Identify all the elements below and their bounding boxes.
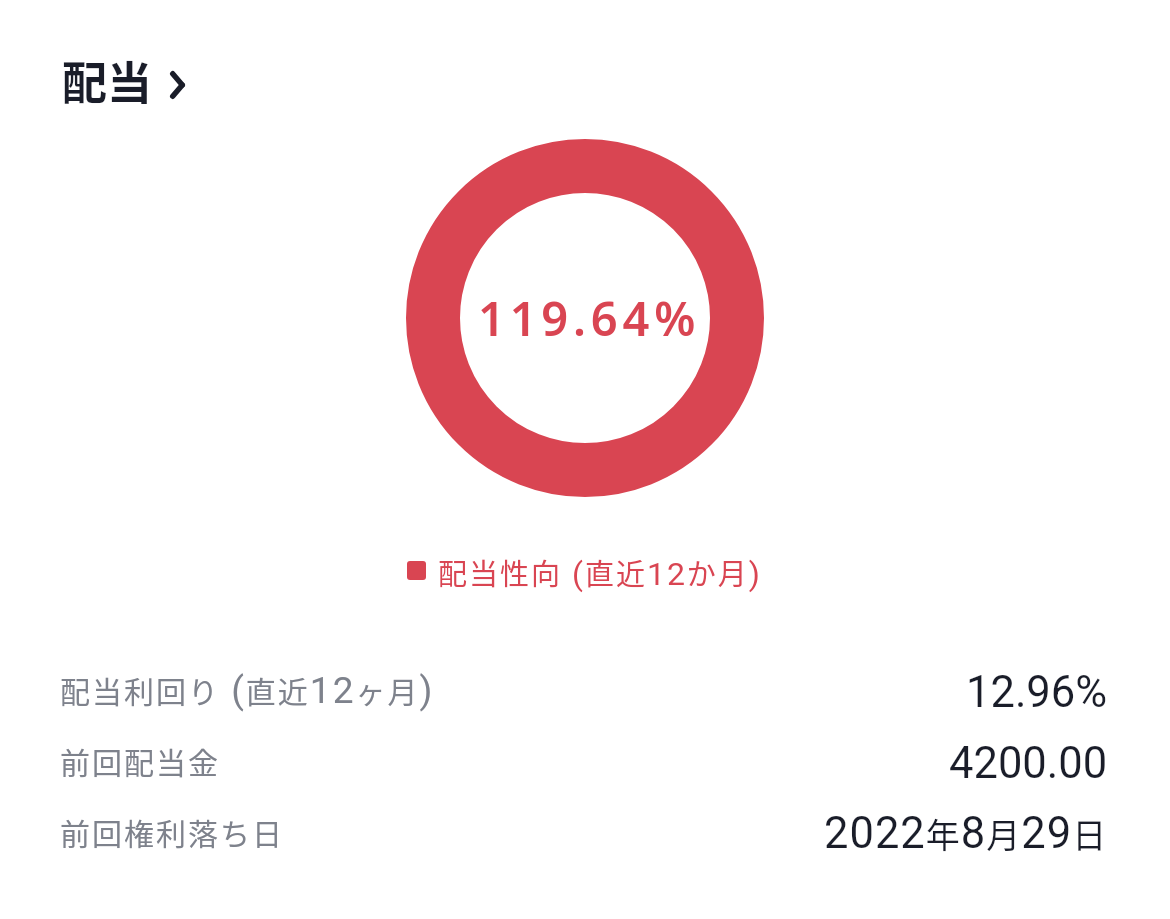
staticText: 119.64% [478, 286, 701, 350]
staticText: 4200.00 [949, 738, 1108, 789]
button[interactable]: 前回配当金 [0, 728, 1170, 799]
staticText: 前回権利落ち日 [60, 810, 284, 853]
staticText: 前回配当金 [60, 739, 220, 782]
staticText: 配当利回り (直近12ヶ月) [60, 668, 435, 712]
staticText: 配当 [62, 48, 153, 113]
button[interactable]: 配当利回り (直近12ヶ月) [0, 657, 1170, 728]
button[interactable]: 配当 — open dividend details [62, 48, 185, 113]
button[interactable]: 前回権利落ち日 [0, 799, 1170, 870]
staticText: 配当性向 (直近12か月) [438, 551, 763, 593]
staticText: 2022年8月29日 [824, 808, 1108, 859]
staticText: 12.96% [966, 667, 1108, 718]
